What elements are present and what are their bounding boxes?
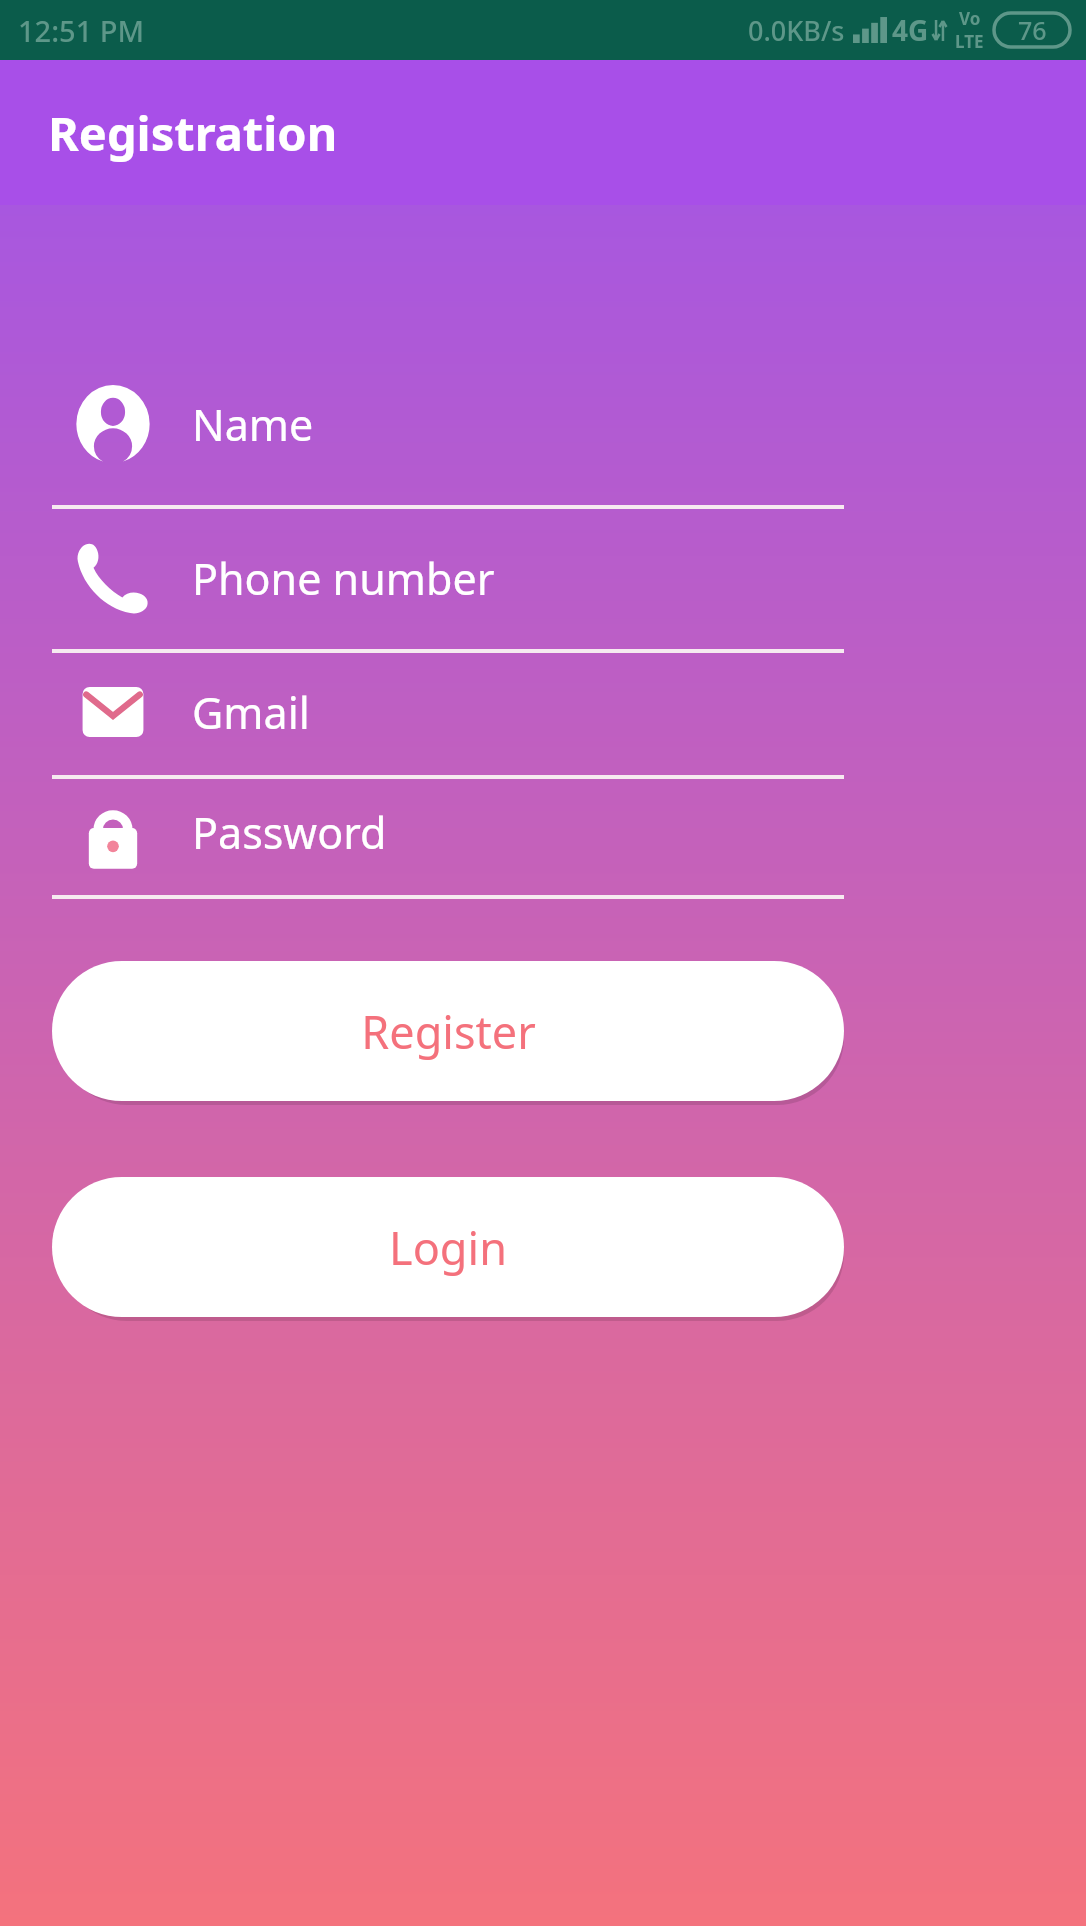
button[interactable]: Password field (0, 793, 1086, 871)
button[interactable]: Register (52, 961, 844, 1101)
button[interactable]: Phone number field (0, 539, 1086, 617)
staticText: 76 (1018, 13, 1047, 47)
staticText: LTE (955, 30, 984, 53)
button[interactable]: Gmail field (0, 673, 1086, 751)
staticText: Phone number (192, 549, 495, 608)
staticText: Registration (48, 101, 338, 165)
staticText: Register (361, 1001, 536, 1062)
button[interactable]: Name field (0, 385, 1086, 463)
staticText: 0.0KB/s (748, 12, 845, 49)
staticText: 4G (892, 11, 929, 49)
staticText: Password (192, 803, 387, 862)
button[interactable]: Login (52, 1177, 844, 1317)
staticText: 12:51 PM (18, 11, 145, 50)
staticText: Gmail (192, 683, 310, 742)
staticText: Login (389, 1217, 507, 1278)
staticText: Name (192, 395, 314, 454)
staticText: Vo (959, 7, 981, 30)
